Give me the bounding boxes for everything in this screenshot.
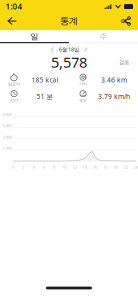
- staticText: 속도: [79, 98, 87, 103]
- button[interactable]: Back: [3, 12, 21, 30]
- staticText: 1,000: [2, 146, 11, 151]
- staticText: 18: [103, 164, 107, 170]
- button[interactable]: 일: [0, 30, 69, 43]
- staticText: 시간: [10, 98, 18, 103]
- staticText: 6월 18일: [59, 46, 79, 53]
- staticText: 3,000: [2, 123, 11, 128]
- button[interactable]: 주: [69, 30, 138, 43]
- staticText: 14: [83, 164, 87, 170]
- staticText: 2,000: [2, 134, 11, 140]
- staticText: 4,000: [2, 112, 11, 117]
- staticText: 걸음: [119, 59, 129, 66]
- staticText: 6: [43, 164, 45, 170]
- staticText: 3.46 km: [101, 76, 127, 84]
- staticText: 2: [22, 164, 24, 170]
- staticText: 주: [99, 32, 107, 41]
- staticText: 16: [93, 164, 97, 170]
- staticText: 통계: [60, 15, 78, 27]
- staticText: 0: [12, 164, 14, 170]
- staticText: 51 분: [36, 92, 53, 101]
- staticText: 10: [62, 164, 66, 170]
- button[interactable]: Share: [117, 12, 135, 30]
- staticText: 3.79 km/h: [98, 92, 130, 101]
- staticText: 칼로리: [8, 81, 20, 86]
- button[interactable]: Next day: [81, 44, 90, 55]
- staticText: 4: [33, 164, 35, 170]
- staticText: 8: [53, 164, 55, 170]
- staticText: 일: [30, 32, 38, 41]
- button[interactable]: Previous day: [48, 44, 57, 55]
- staticText: 20: [113, 164, 117, 170]
- staticText: 12: [72, 164, 76, 170]
- staticText: 24: [134, 164, 138, 170]
- staticText: 185 kcal: [31, 76, 58, 84]
- staticText: 거리: [79, 81, 87, 86]
- staticText: 5,578: [51, 52, 87, 72]
- staticText: 22: [124, 164, 128, 170]
- staticText: 1:04: [5, 1, 22, 12]
